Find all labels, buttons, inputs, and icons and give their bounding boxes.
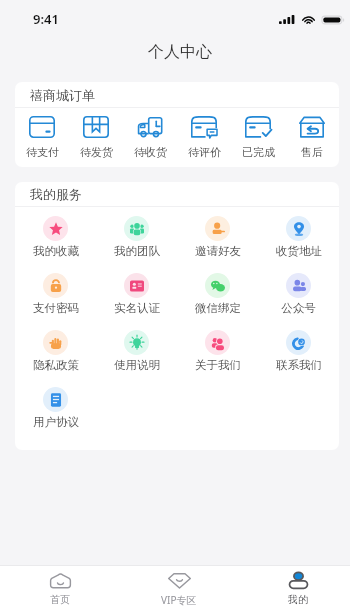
button[interactable]: 使用说明 [96,330,177,387]
button[interactable]: 联系我们 [258,330,339,387]
button[interactable]: 待收货 [123,108,177,167]
button[interactable]: 用户协议 [15,387,96,444]
staticText: 已完成 [242,145,275,159]
button[interactable]: 微信绑定 [177,273,258,330]
button[interactable]: 首页 [15,566,105,616]
staticText: 支付密码 [33,301,79,315]
button[interactable]: 我的团队 [96,216,177,273]
button[interactable]: 待评价 [177,108,231,167]
staticText: 关于我们 [195,358,241,372]
button[interactable]: VIP专区 [134,566,224,616]
button[interactable]: 公众号 [258,273,339,330]
staticText: 我的收藏 [33,244,79,258]
button[interactable]: 我的 [253,566,343,616]
staticText: 待评价 [188,145,221,159]
staticText: 公众号 [281,301,316,315]
button[interactable]: 邀请好友 [177,216,258,273]
staticText: 用户协议 [33,415,79,429]
staticText: 9:41 [33,10,59,28]
staticText: 待发货 [80,145,113,159]
staticText: 隐私政策 [33,358,79,372]
staticText: 禧商城订单 [30,87,95,103]
staticText: 个人中心 [148,42,212,62]
staticText: 联系我们 [276,358,322,372]
staticText: 邀请好友 [195,244,241,258]
staticText: 待收货 [134,145,167,159]
staticText: 售后 [301,145,323,159]
button[interactable]: 售后 [285,108,339,167]
button[interactable]: 待发货 [69,108,123,167]
button[interactable]: 关于我们 [177,330,258,387]
staticText: 使用说明 [114,358,160,372]
staticText: 收货地址 [276,244,322,258]
button[interactable]: 已完成 [231,108,285,167]
button[interactable]: 实名认证 [96,273,177,330]
staticText: 我的 [288,593,308,606]
button[interactable]: 我的收藏 [15,216,96,273]
staticText: 我的服务 [30,186,82,202]
button[interactable]: 收货地址 [258,216,339,273]
staticText: 待支付 [26,145,59,159]
button[interactable]: 待支付 [15,108,69,167]
staticText: VIP专区 [161,593,197,607]
staticText: 首页 [50,593,70,606]
staticText: 我的团队 [114,244,160,258]
staticText: 微信绑定 [195,301,241,315]
button[interactable]: 支付密码 [15,273,96,330]
staticText: 实名认证 [114,301,160,315]
button[interactable]: 隐私政策 [15,330,96,387]
